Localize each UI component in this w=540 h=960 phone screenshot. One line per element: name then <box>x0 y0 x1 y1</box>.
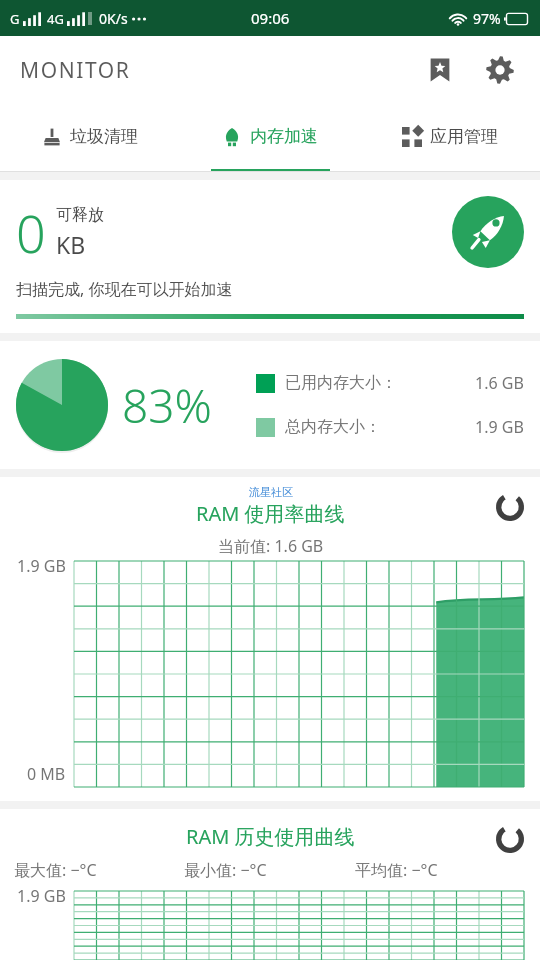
staticText: 1.6 GB <box>475 372 524 394</box>
staticText: MONITOR <box>20 56 131 85</box>
staticText: RAM 历史使用曲线 <box>186 823 355 850</box>
button[interactable]: Settings <box>476 46 524 94</box>
staticText: 97% <box>473 9 501 28</box>
staticText: 应用管理 <box>430 126 498 147</box>
staticText: 可释放 <box>56 205 104 225</box>
button[interactable]: Bookmark <box>416 46 464 94</box>
staticText: 已用内存大小： <box>285 373 397 393</box>
staticText: 扫描完成, 你现在可以开始加速 <box>16 278 233 300</box>
button[interactable]: Refresh history <box>488 817 532 861</box>
staticText: 当前值: 1.6 GB <box>218 535 324 555</box>
staticText: 4G <box>47 10 64 28</box>
staticText: 流星社区 <box>249 485 293 499</box>
staticText: G <box>10 10 20 28</box>
staticText: 内存加速 <box>250 126 318 147</box>
staticText: RAM 使用率曲线 <box>196 500 345 527</box>
staticText: 0K/s <box>99 9 128 28</box>
button[interactable]: 垃圾清理 <box>0 104 180 172</box>
staticText: 垃圾清理 <box>70 126 138 147</box>
staticText: 0 <box>16 197 46 268</box>
button[interactable]: Refresh <box>488 485 532 529</box>
button[interactable]: 应用管理 <box>360 104 540 172</box>
staticText: 1.9 GB <box>17 555 66 577</box>
staticText: 0 MB <box>27 763 66 785</box>
staticText: 最大值: −°C <box>14 859 184 881</box>
staticText: KB <box>56 229 86 260</box>
button[interactable]: 内存加速 <box>180 104 360 172</box>
staticText: 平均值: −°C <box>355 859 526 881</box>
button[interactable]: Boost <box>452 196 524 268</box>
staticText: 83% <box>122 374 212 437</box>
staticText: 总内存大小： <box>285 417 381 437</box>
staticText: 1.9 GB <box>17 885 66 907</box>
staticText: 09:06 <box>251 8 290 28</box>
staticText: 1.9 GB <box>475 416 524 438</box>
staticText: 最小值: −°C <box>184 859 355 881</box>
